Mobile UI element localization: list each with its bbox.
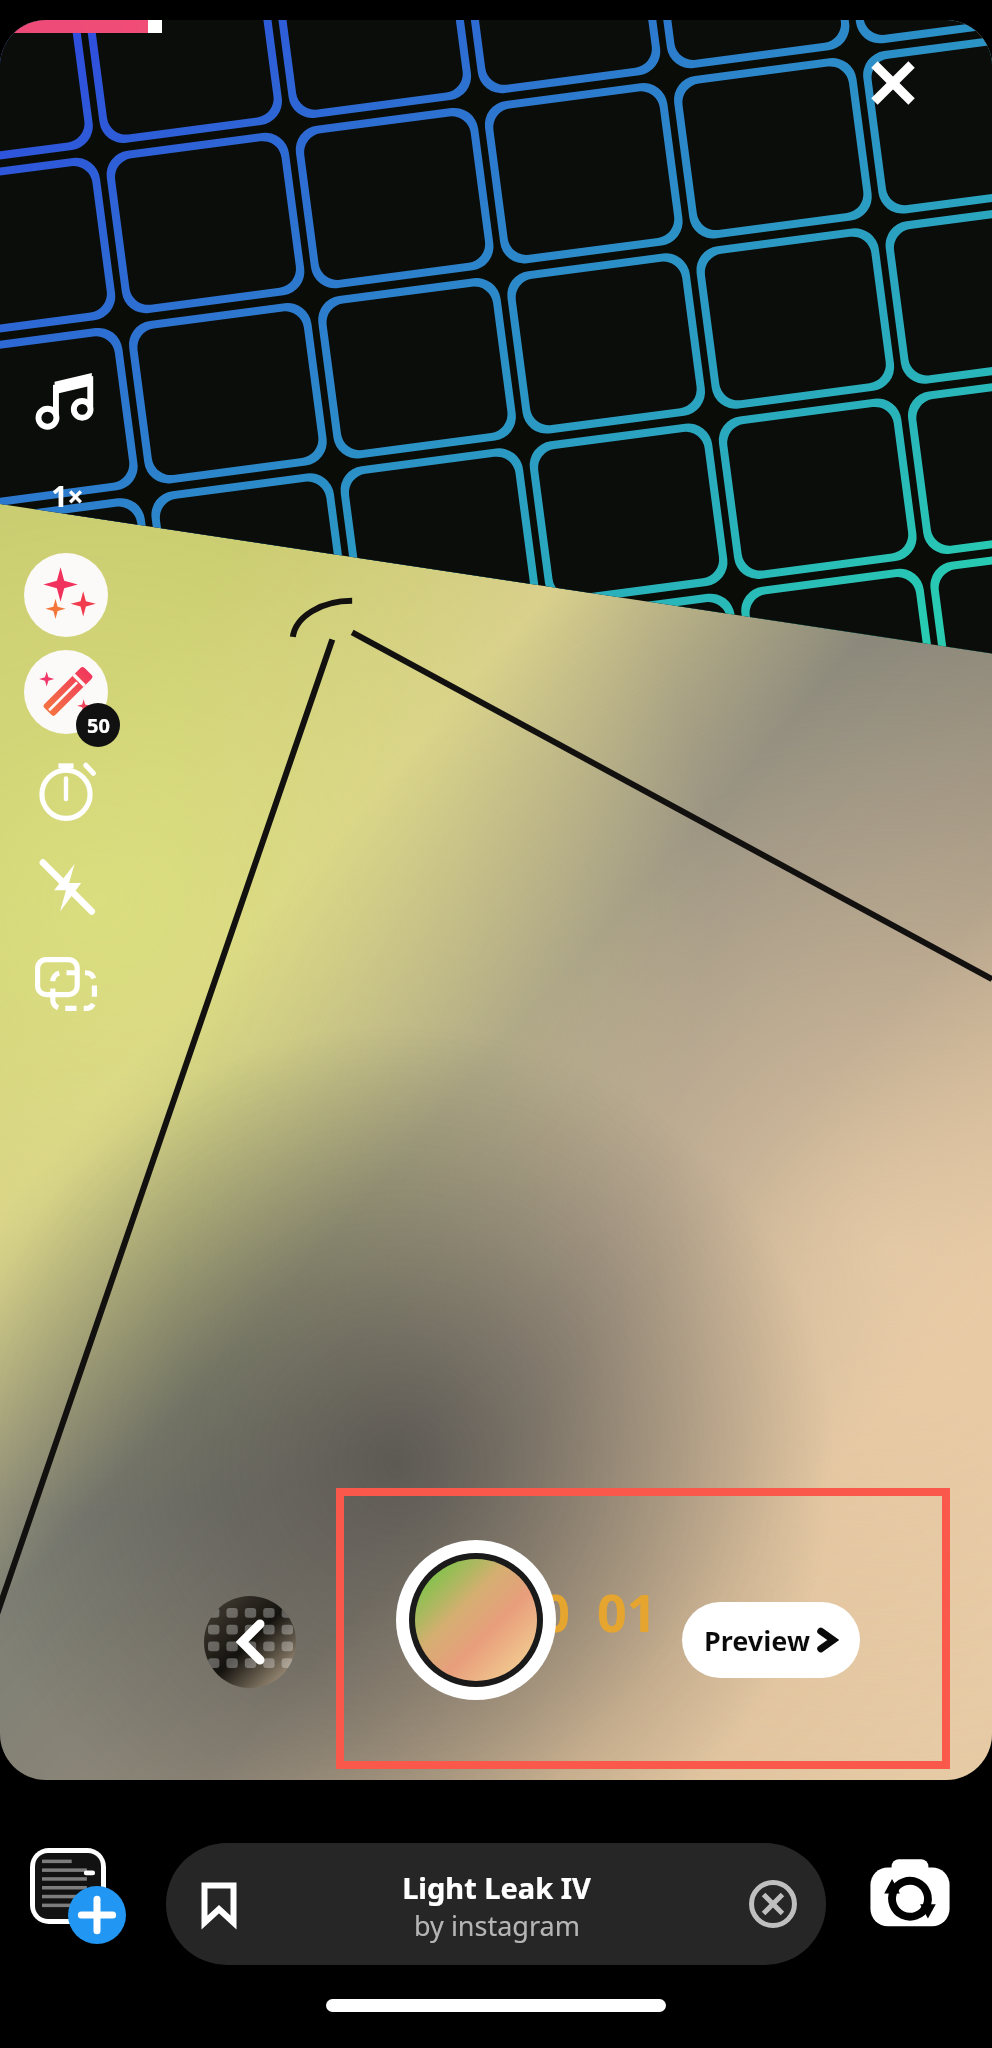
button[interactable]: Switch camera [864,1850,956,1942]
staticText: 1× [51,477,84,515]
button[interactable]: Save audio [190,1875,248,1933]
button[interactable]: Add [68,1886,126,1944]
staticText: by instagram [414,1907,580,1944]
button[interactable]: Close [858,48,928,118]
button[interactable]: Light Leak IV filter [396,1540,556,1700]
button[interactable]: Effects [24,553,108,637]
button[interactable]: Retouch [24,650,108,734]
button[interactable]: Timer [33,757,99,823]
button[interactable]: Gallery [30,1848,106,1924]
button[interactable]: Previous filter [204,1596,296,1688]
button[interactable]: Music [36,370,98,432]
button[interactable]: Preview [682,1602,860,1678]
button[interactable]: Layout [33,951,99,1017]
staticText: 50 [87,712,110,739]
staticText: 09 10 01 [424,1576,657,1647]
staticText: Preview [704,1622,811,1659]
button[interactable]: 1× [30,473,104,519]
button[interactable]: Flash off [33,854,99,920]
staticText: Light Leak IV [402,1868,591,1907]
button[interactable]: Save audio [166,1843,826,1965]
button[interactable]: Remove audio [744,1875,802,1933]
